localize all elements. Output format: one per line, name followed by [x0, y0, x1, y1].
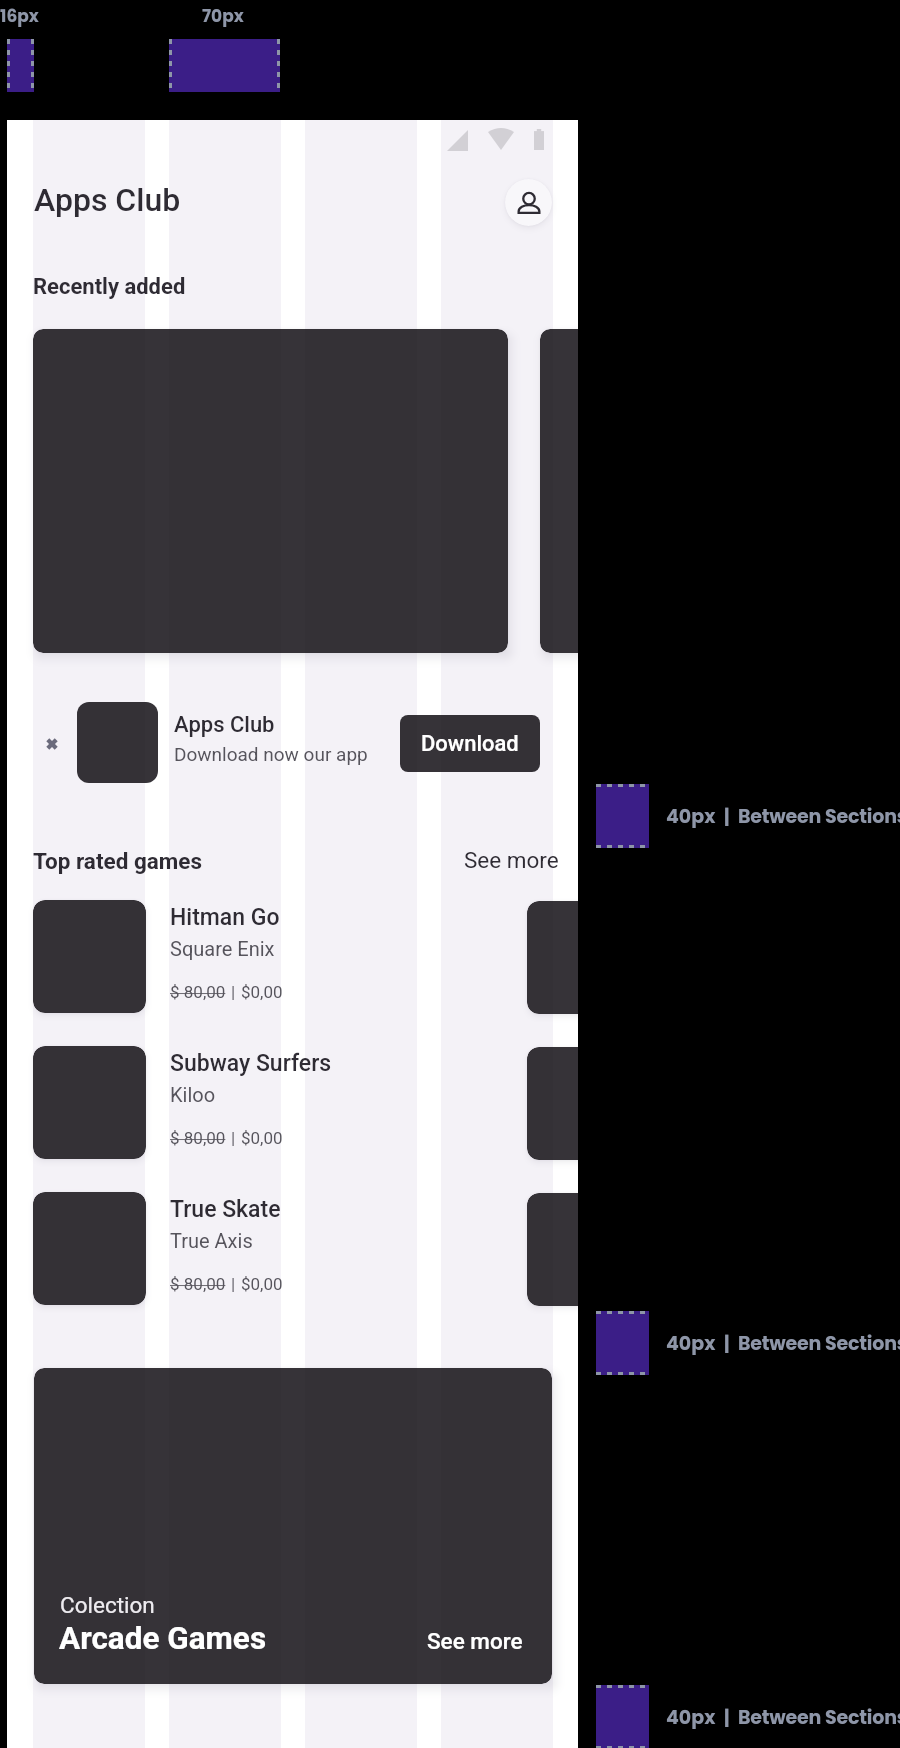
staticText: $ 80,00: [170, 1274, 226, 1294]
staticText: 40px: [666, 1330, 716, 1357]
staticText: |: [231, 1274, 236, 1294]
staticText: Subway Surfers: [170, 1050, 332, 1077]
staticText: Download now our app: [174, 743, 368, 765]
staticText: True Axis: [170, 1229, 253, 1252]
staticText: Download: [421, 731, 519, 757]
staticText: Between Sections: [738, 1704, 900, 1731]
staticText: Apps Club: [34, 181, 181, 219]
staticText: $ 80,00: [170, 1128, 226, 1148]
staticText: See more: [464, 847, 559, 873]
button[interactable]: [527, 1193, 578, 1306]
staticText: 40px: [666, 803, 716, 830]
button[interactable]: [527, 1047, 578, 1160]
staticText: 40px: [666, 1704, 716, 1731]
button[interactable]: Download: [400, 715, 540, 772]
staticText: See more: [427, 1628, 523, 1654]
staticText: Colection: [60, 1592, 155, 1618]
staticText: Between Sections: [738, 1330, 900, 1357]
button[interactable]: Hitman Go: [33, 900, 513, 1013]
button[interactable]: True Skate: [33, 1192, 513, 1305]
button[interactable]: [33, 329, 508, 653]
button[interactable]: Close: [46, 738, 58, 750]
button[interactable]: Colection: [34, 1368, 552, 1684]
staticText: Square Enix: [170, 937, 275, 960]
staticText: $ 80,00: [170, 982, 226, 1002]
staticText: Apps Club: [174, 712, 275, 738]
staticText: Arcade Games: [59, 1620, 267, 1657]
button[interactable]: [540, 329, 578, 653]
staticText: Hitman Go: [170, 904, 280, 931]
staticText: 70px: [202, 4, 244, 28]
staticText: Between Sections: [738, 803, 900, 830]
staticText: Kiloo: [170, 1083, 216, 1106]
staticText: 16px: [0, 4, 39, 28]
staticText: |: [231, 1128, 236, 1148]
staticText: $0,00: [241, 982, 283, 1002]
staticText: $0,00: [241, 1274, 283, 1294]
button[interactable]: [33, 687, 552, 797]
staticText: |: [724, 803, 730, 830]
button[interactable]: Profile: [505, 179, 552, 226]
staticText: Top rated games: [33, 848, 203, 874]
staticText: $0,00: [241, 1128, 283, 1148]
staticText: Recently added: [33, 274, 186, 300]
staticText: |: [724, 1704, 730, 1731]
button[interactable]: Subway Surfers: [33, 1046, 513, 1159]
staticText: |: [724, 1330, 730, 1357]
button[interactable]: See more: [427, 1628, 523, 1654]
button[interactable]: See more: [464, 847, 559, 873]
button[interactable]: [527, 901, 578, 1014]
staticText: |: [231, 982, 236, 1002]
staticText: True Skate: [170, 1196, 281, 1223]
